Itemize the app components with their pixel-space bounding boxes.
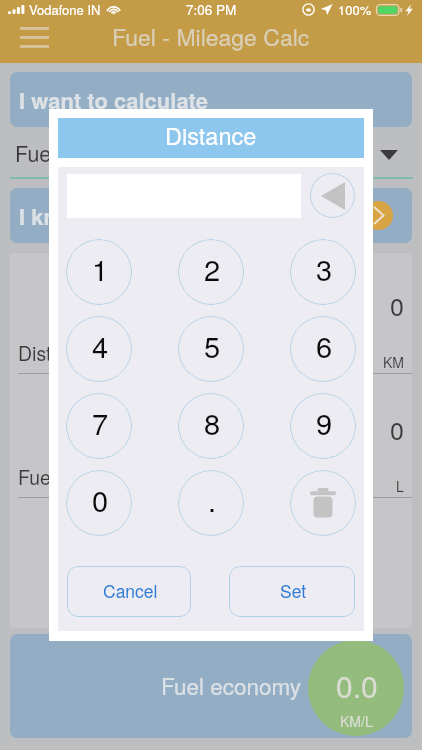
staticText: Cancel [103, 578, 158, 603]
staticText: 0 [92, 479, 109, 521]
button[interactable]: 9 [290, 393, 356, 459]
staticText: 9 [316, 402, 333, 444]
button[interactable]: 2 [178, 239, 244, 305]
staticText: 3 [316, 248, 333, 290]
staticText: Fuel economy [15, 137, 149, 168]
staticText: 2 [204, 248, 221, 290]
staticText: KM [383, 352, 404, 372]
button[interactable]: Fuel [10, 418, 412, 542]
button[interactable]: 5 [178, 316, 244, 382]
staticText: 7 [92, 402, 109, 444]
staticText: 4 [92, 325, 109, 367]
button[interactable]: Distance [10, 294, 412, 418]
button[interactable]: Clear [290, 470, 356, 536]
staticText: Fuel economy [161, 669, 302, 701]
staticText: Distance [165, 118, 257, 152]
staticText: 0 [390, 411, 404, 447]
staticText: 8 [204, 402, 221, 444]
button[interactable]: 0.0 [308, 640, 404, 736]
staticText: KM/L [340, 711, 373, 731]
button[interactable]: Set [229, 566, 355, 617]
staticText: I want to calculate [19, 84, 209, 116]
button[interactable]: 3 [290, 239, 356, 305]
button[interactable]: I want to calculate [10, 72, 412, 127]
staticText: 0.0 [336, 664, 378, 707]
staticText: Set [280, 578, 307, 603]
staticText: . [208, 479, 217, 521]
button[interactable]: Fuel economy [0, 128, 422, 183]
button[interactable]: I know [10, 188, 412, 243]
staticText: Vodafone IN [29, 0, 101, 19]
button[interactable]: Backspace [310, 173, 355, 218]
button[interactable]: Cancel [67, 566, 191, 617]
staticText: 7:06 PM [186, 0, 237, 19]
button[interactable]: 4 [66, 316, 132, 382]
button[interactable]: Calculate [364, 201, 393, 230]
button[interactable]: 7 [66, 393, 132, 459]
button[interactable]: 6 [290, 316, 356, 382]
button[interactable]: 8 [178, 393, 244, 459]
button[interactable]: Menu [11, 21, 57, 54]
staticText: Distance [18, 339, 94, 367]
staticText: Fuel - Mileage Calc [112, 20, 310, 53]
staticText: 1 [92, 248, 109, 290]
staticText: Fuel [18, 463, 56, 491]
staticText: 100% [338, 0, 372, 19]
staticText: 6 [316, 325, 333, 367]
button[interactable]: 1 [66, 239, 132, 305]
staticText: L [396, 476, 404, 496]
staticText: 0 [390, 287, 404, 323]
button[interactable]: . [178, 470, 244, 536]
staticText: I know [19, 200, 88, 232]
button[interactable]: 0 [66, 470, 132, 536]
staticText: 5 [204, 325, 221, 367]
